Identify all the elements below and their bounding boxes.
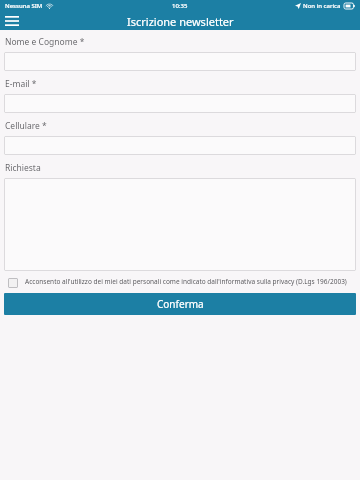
button[interactable]	[4, 136, 356, 155]
staticText: Nome e Cognome *	[5, 36, 85, 48]
button[interactable]	[4, 52, 356, 71]
button[interactable]	[4, 94, 356, 113]
button[interactable]: Menu	[0, 12, 24, 30]
button[interactable]	[4, 178, 356, 271]
staticText: Richiesta	[5, 162, 41, 174]
staticText: Acconsento all'utilizzo dei miei dati pe…	[25, 277, 354, 286]
staticText: Cellulare *	[5, 120, 47, 132]
staticText: E-mail *	[5, 78, 37, 90]
staticText: Nessuna SIM	[5, 2, 43, 10]
staticText: Iscrizione newsletter	[127, 14, 234, 29]
staticText: Conferma	[157, 297, 204, 311]
button[interactable]: Conferma	[4, 293, 356, 315]
staticText: 10:35	[172, 2, 188, 10]
button[interactable]: Acconsento all'utilizzo dei miei dati pe…	[4, 277, 356, 288]
staticText: Non in carica	[303, 2, 341, 10]
